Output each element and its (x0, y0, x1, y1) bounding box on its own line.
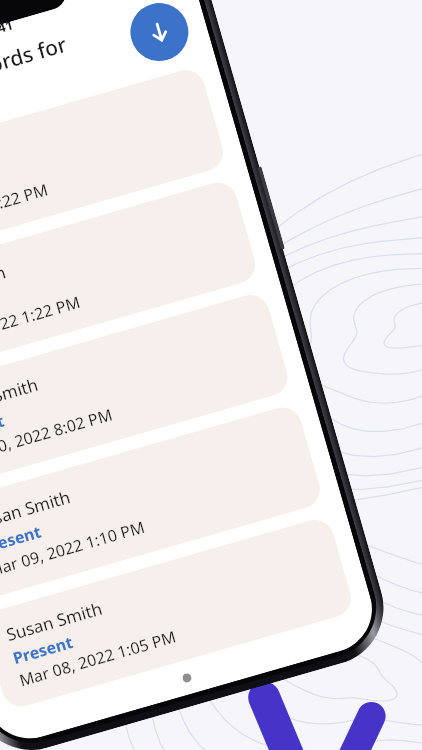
button[interactable]: Susan Smith (0, 178, 260, 378)
staticText: Mar 11, 2022 1:22 PM (0, 291, 83, 357)
button[interactable]: Susan Smith (0, 403, 324, 603)
staticText: Attendance Records for (0, 30, 70, 123)
staticText: Absent (0, 409, 7, 446)
staticText: Mar 09, 2022 1:10 PM (0, 516, 147, 582)
staticText: Susan Smith (0, 373, 41, 422)
button[interactable]: Susan Smith (0, 65, 228, 265)
staticText: Present (0, 520, 44, 558)
staticText: Susan Smith (3, 597, 105, 646)
button[interactable]: Susan Smith (0, 290, 292, 490)
button[interactable]: Download records (123, 0, 195, 68)
staticText: Susan Smith (0, 485, 73, 534)
staticText: Present (10, 631, 76, 669)
staticText: Mar 12, 2022 1:22 PM (0, 178, 50, 244)
staticText: Mar 10, 2022 8:02 PM (0, 403, 115, 469)
button[interactable]: Susan Smith (0, 515, 356, 711)
staticText: 9:41 (0, 15, 15, 40)
staticText: Mar 08, 2022 1:05 PM (17, 625, 178, 691)
staticText: Susan Smith (0, 260, 8, 310)
